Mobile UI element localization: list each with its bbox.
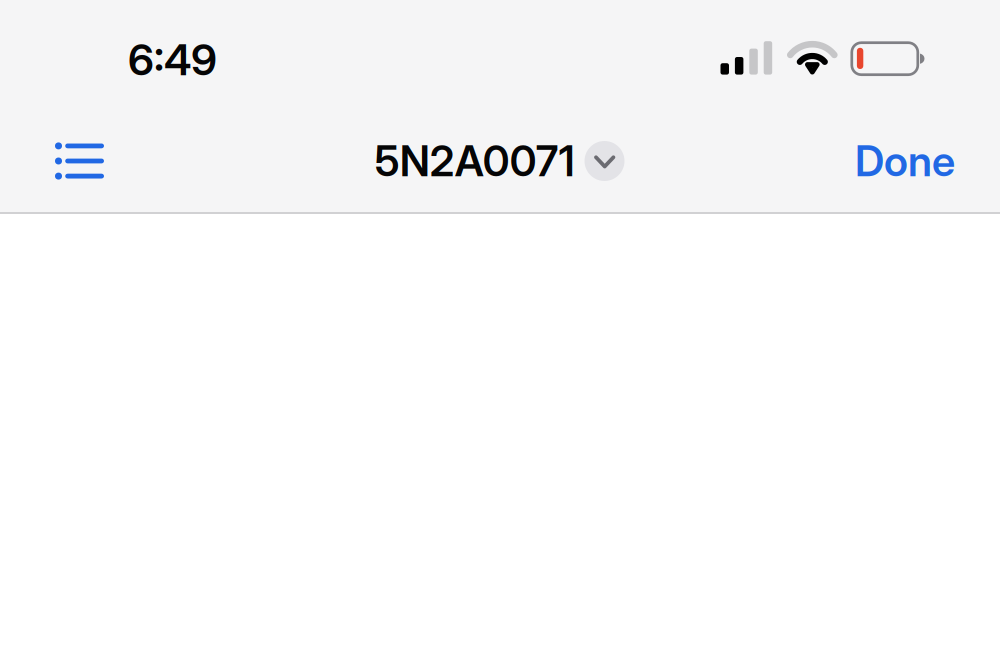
staticText: 5N2A0071	[375, 136, 575, 186]
button[interactable]: List	[27, 113, 131, 209]
staticText: Done	[855, 136, 955, 186]
button[interactable]: Done	[839, 113, 971, 209]
button[interactable]: 5N2A0071	[375, 113, 624, 209]
staticText: 6:49	[128, 34, 217, 86]
